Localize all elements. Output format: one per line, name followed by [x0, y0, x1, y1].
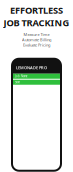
staticText: Start [15, 80, 20, 84]
staticText: Automate Billing [22, 37, 51, 42]
staticText: Evaluate Pricing [23, 42, 50, 48]
staticText: LEMONADE PRO [16, 65, 47, 70]
staticText: Measure Time [23, 32, 49, 37]
staticText: Job Name [15, 74, 28, 78]
staticText: EFFORTLESS [10, 4, 63, 16]
staticText: JOB TRACKING [3, 16, 69, 29]
